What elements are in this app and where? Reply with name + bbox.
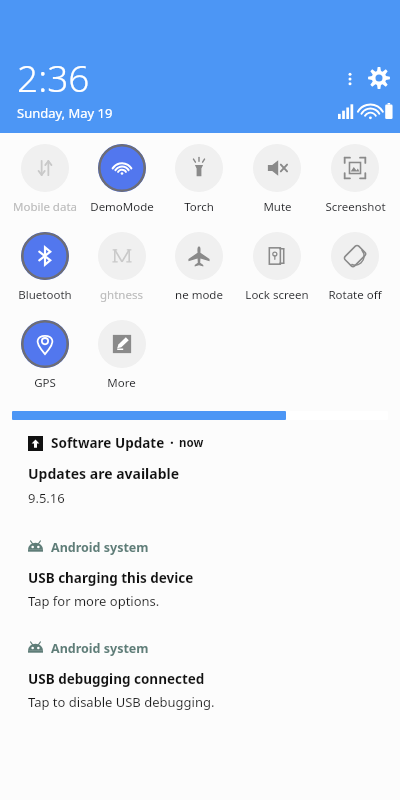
staticText: Android system: [51, 539, 149, 556]
staticText: More: [107, 375, 136, 391]
staticText: Torch: [184, 199, 214, 215]
staticText: USB debugging connected: [28, 670, 205, 688]
button[interactable]: Rotate off: [316, 230, 394, 305]
button[interactable]: Mute: [238, 142, 316, 217]
button[interactable]: Lock screen: [238, 230, 316, 305]
staticText: Mobile data: [13, 199, 77, 215]
button[interactable]: More: [83, 318, 160, 393]
button[interactable]: Software Update: [28, 434, 372, 507]
staticText: Tap for more options.: [28, 592, 160, 610]
button[interactable]: Torch: [160, 142, 238, 217]
button[interactable]: Bluetooth: [6, 230, 83, 305]
staticText: ne mode: [175, 287, 223, 303]
button[interactable]: More options: [336, 65, 364, 93]
staticText: 2:36: [17, 52, 90, 102]
staticText: Rotate off: [328, 287, 382, 303]
staticText: Software Update: [51, 434, 165, 452]
button[interactable]: Screenshot: [316, 142, 394, 217]
button[interactable]: Mobile data: [6, 142, 83, 217]
staticText: DemoMode: [90, 199, 154, 215]
staticText: Android system: [51, 640, 149, 657]
button[interactable]: Settings: [364, 63, 394, 93]
staticText: ghtness: [100, 287, 143, 303]
button[interactable]: Android system: [28, 539, 372, 610]
button[interactable]: Android system: [28, 640, 372, 711]
staticText: Bluetooth: [18, 287, 72, 303]
staticText: 9.5.16: [28, 489, 65, 507]
button[interactable]: ne mode: [160, 230, 238, 305]
button[interactable]: GPS: [6, 318, 83, 393]
staticText: Mute: [263, 199, 292, 215]
staticText: now: [179, 435, 204, 451]
button[interactable]: ghtness: [83, 230, 160, 305]
staticText: Screenshot: [325, 199, 386, 215]
staticText: Lock screen: [245, 287, 309, 303]
staticText: GPS: [34, 375, 56, 391]
staticText: USB charging this device: [28, 569, 194, 587]
staticText: Tap to disable USB debugging.: [28, 693, 215, 711]
button[interactable]: DemoMode: [83, 142, 160, 217]
staticText: Updates are available: [28, 464, 180, 483]
staticText: Sunday, May 19: [17, 104, 113, 122]
staticText: ·: [170, 434, 174, 452]
